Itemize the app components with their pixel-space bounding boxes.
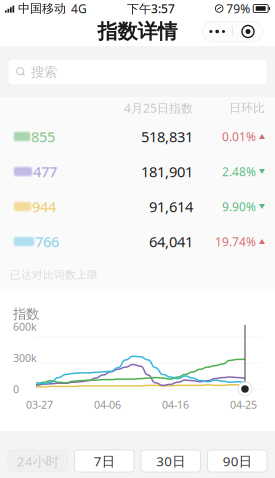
staticText: 30日 <box>156 452 185 470</box>
staticText: 766 <box>35 232 59 251</box>
staticText: 04-25 <box>230 398 257 412</box>
staticText: 24小时 <box>17 452 59 470</box>
button[interactable]: 477 <box>0 154 275 189</box>
staticText: 91,614 <box>149 197 193 216</box>
staticText: 0 <box>13 382 19 396</box>
button[interactable]: 90日 <box>207 450 267 472</box>
staticText: 2.48% <box>222 163 256 179</box>
staticText: 4月25日指数 <box>124 100 193 116</box>
staticText: 指数详情 <box>97 19 177 44</box>
button[interactable]: 7日 <box>74 450 134 472</box>
staticText: 0.01% <box>222 128 256 144</box>
staticText: 944 <box>32 197 56 216</box>
staticText: 指数 <box>13 306 39 322</box>
staticText: 4G <box>71 0 87 16</box>
staticText: 300k <box>13 351 37 365</box>
button[interactable]: 24小时 <box>8 450 67 472</box>
staticText: 64,041 <box>149 232 193 251</box>
staticText: 855 <box>31 127 55 146</box>
staticText: 9.90% <box>222 198 256 214</box>
staticText: 90日 <box>223 452 252 470</box>
staticText: 已达对比词数上限 <box>10 268 98 281</box>
staticText: 下午3:57 <box>127 0 175 16</box>
button[interactable]: 855 <box>0 119 275 154</box>
staticText: 04-16 <box>162 398 189 412</box>
staticText: 19.74% <box>215 233 256 249</box>
button[interactable]: 944 <box>0 189 275 224</box>
staticText: 7日 <box>94 452 115 470</box>
button[interactable]: More <box>202 21 232 41</box>
staticText: 600k <box>13 319 37 334</box>
staticText: 04-06 <box>94 398 121 412</box>
button[interactable]: 766 <box>0 224 275 259</box>
staticText: 181,901 <box>141 162 193 181</box>
staticText: 日环比 <box>229 101 265 115</box>
staticText: 518,831 <box>141 127 193 146</box>
staticText: 03-27 <box>26 398 53 412</box>
button[interactable]: 搜索 <box>8 59 267 85</box>
staticText: 搜索 <box>31 64 57 80</box>
staticText: 中国移动 <box>18 1 66 16</box>
staticText: 477 <box>33 162 57 181</box>
staticText: 79% <box>226 0 250 16</box>
button[interactable]: 30日 <box>141 450 200 472</box>
button[interactable]: Close <box>233 21 263 41</box>
